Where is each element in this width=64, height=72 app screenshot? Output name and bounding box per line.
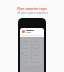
staticText: all your plans together <box>17 11 48 15</box>
button[interactable] <box>32 38 43 44</box>
button[interactable] <box>22 30 42 33</box>
button[interactable] <box>21 59 31 65</box>
button[interactable] <box>32 59 43 65</box>
button[interactable] <box>21 38 31 44</box>
button[interactable] <box>21 45 31 51</box>
button[interactable] <box>32 45 43 51</box>
button[interactable] <box>21 52 31 58</box>
staticText: Plan smarter trips <box>17 6 47 10</box>
button[interactable] <box>32 52 43 58</box>
